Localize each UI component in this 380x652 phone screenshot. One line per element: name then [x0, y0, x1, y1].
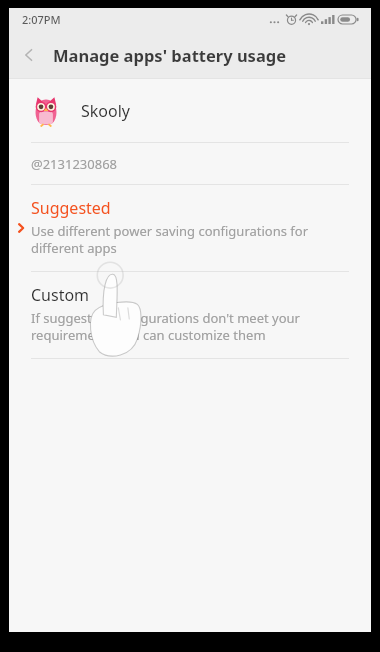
staticText: @2131230868	[31, 155, 118, 173]
staticText: Use different power saving configuration…	[31, 222, 333, 257]
staticText: Custom	[31, 284, 90, 306]
staticText: 2:07PM	[22, 12, 61, 27]
staticText: If suggested configurations don't meet y…	[31, 309, 333, 344]
button[interactable]: Back	[9, 35, 49, 75]
staticText: Skooly	[81, 100, 130, 122]
button[interactable]: Custom	[9, 272, 371, 358]
staticText: Suggested	[31, 197, 111, 219]
staticText: Manage apps' battery usage	[53, 44, 287, 66]
button[interactable]: Suggested	[9, 185, 371, 271]
button[interactable]: Skooly	[9, 79, 371, 142]
